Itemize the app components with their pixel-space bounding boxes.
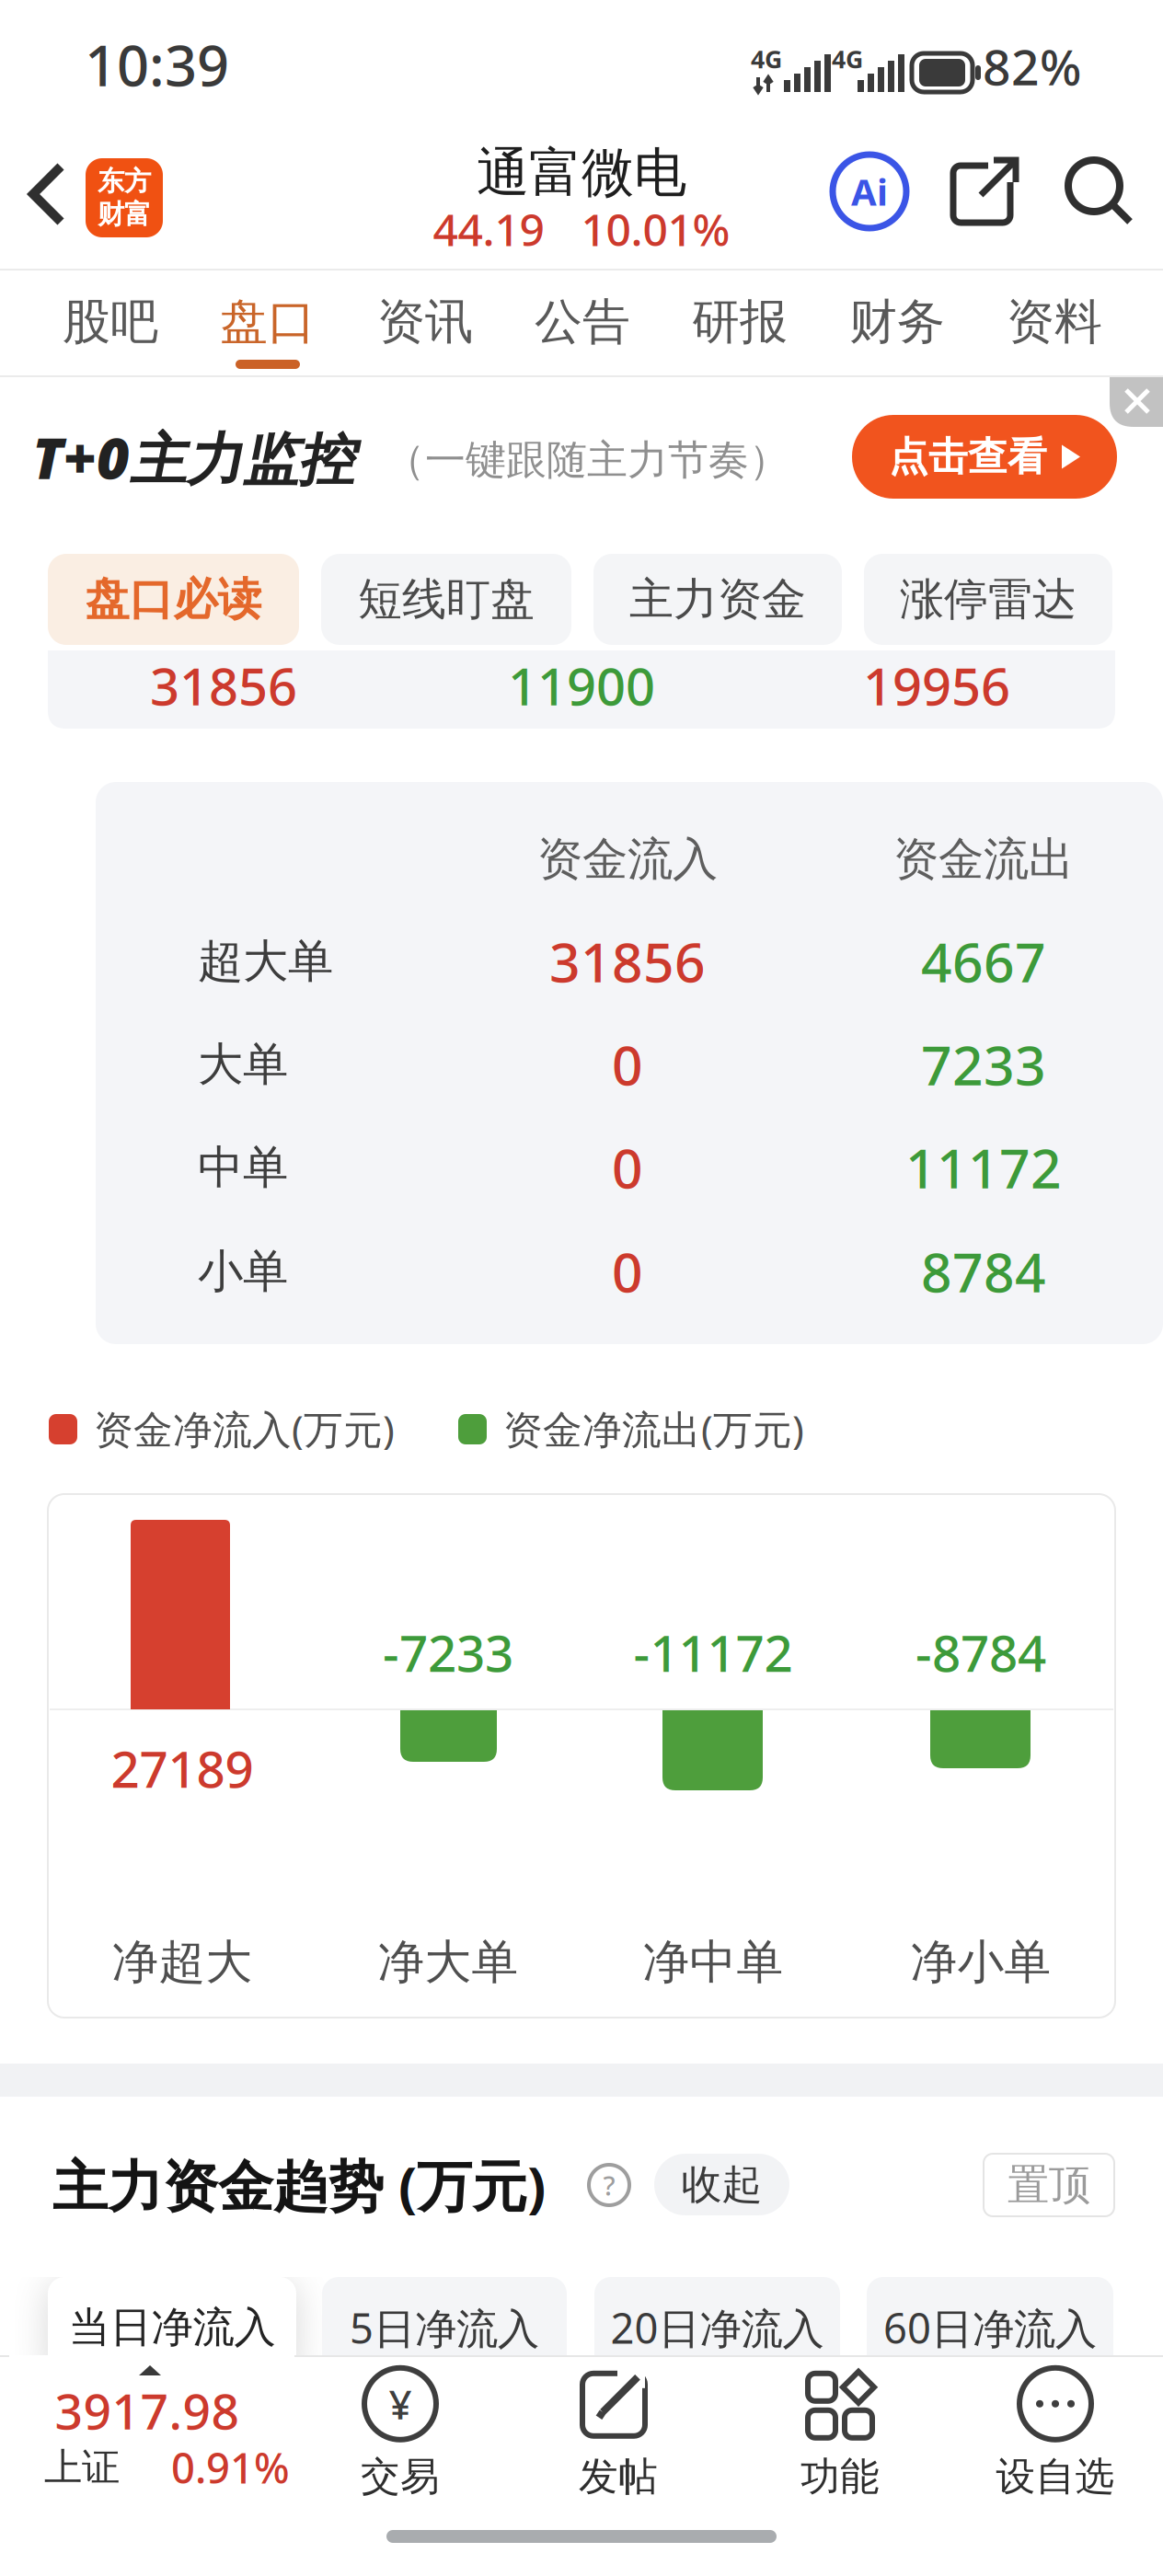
- staticText: 资金净流出(万元): [503, 1403, 804, 1455]
- staticText: -7233: [383, 1619, 513, 1686]
- staticText: 0: [612, 1029, 643, 1100]
- staticText: 设自选: [996, 2453, 1115, 2501]
- staticText: 31856: [150, 651, 297, 720]
- button[interactable]: 盘口必读: [48, 554, 299, 645]
- button[interactable]: Search: [1064, 155, 1134, 225]
- button[interactable]: 涨停雷达: [864, 554, 1112, 645]
- staticText: 10.01%: [581, 200, 730, 258]
- staticText: 11172: [905, 1132, 1062, 1203]
- staticText: 4667: [921, 926, 1046, 997]
- button[interactable]: 5日净流入: [322, 2277, 567, 2378]
- staticText: 发帖: [579, 2453, 658, 2501]
- staticText: 60日净流入: [883, 2300, 1097, 2355]
- staticText: 点击查看: [889, 433, 1047, 481]
- button[interactable]: Ai 助手: [830, 152, 909, 231]
- staticText: 研报: [692, 293, 788, 351]
- staticText: 小单: [198, 1244, 288, 1299]
- staticText: 4G: [832, 43, 863, 75]
- staticText: T+0主力监控: [32, 420, 354, 495]
- staticText: 0.91%: [171, 2440, 290, 2495]
- staticText: （一键跟随主力节奏）: [385, 435, 789, 485]
- staticText: 0: [612, 1132, 643, 1203]
- staticText: 置顶: [1008, 2159, 1090, 2211]
- button[interactable]: 财务: [823, 270, 971, 375]
- staticText: 股吧: [63, 293, 158, 351]
- staticText: 主力资金趋势 (万元): [52, 2148, 546, 2222]
- button[interactable]: 点击查看: [852, 415, 1117, 499]
- staticText: 公告: [535, 293, 630, 351]
- button[interactable]: 帮助: [587, 2163, 631, 2207]
- staticText: ¥: [389, 2377, 412, 2431]
- staticText: 收起: [681, 2160, 762, 2209]
- button[interactable]: 盘口: [194, 270, 341, 375]
- staticText: 资讯: [377, 293, 473, 351]
- button[interactable]: Close: [1110, 377, 1163, 427]
- button[interactable]: 置顶: [984, 2154, 1114, 2216]
- button[interactable]: Back: [29, 163, 66, 225]
- staticText: 7233: [921, 1029, 1046, 1100]
- staticText: 3917.98: [55, 2378, 240, 2443]
- staticText: 财务: [849, 293, 945, 351]
- staticText: 4G: [751, 43, 782, 75]
- staticText: -11172: [633, 1619, 793, 1686]
- staticText: ?: [603, 2167, 615, 2203]
- button[interactable]: 20日净流入: [594, 2277, 840, 2378]
- button[interactable]: 股吧: [37, 270, 184, 375]
- staticText: 净中单: [643, 1934, 783, 1991]
- staticText: 主力资金: [629, 572, 806, 627]
- staticText: 20日净流入: [610, 2300, 824, 2355]
- staticText: 资金净流入(万元): [94, 1403, 395, 1455]
- button[interactable]: 功能: [739, 2364, 941, 2502]
- staticText: 财富: [98, 198, 151, 231]
- staticText: 当日净流入: [69, 2302, 276, 2353]
- button[interactable]: Share: [953, 156, 1021, 224]
- staticText: 中单: [198, 1140, 288, 1195]
- button[interactable]: 60日净流入: [867, 2277, 1113, 2378]
- staticText: 净大单: [378, 1934, 518, 1991]
- button[interactable]: 设自选: [954, 2364, 1157, 2502]
- staticText: 8784: [921, 1236, 1046, 1307]
- staticText: 19956: [863, 651, 1010, 720]
- staticText: 44.19: [433, 200, 544, 258]
- staticText: 27189: [111, 1735, 253, 1802]
- button[interactable]: 主力资金: [593, 554, 842, 645]
- button[interactable]: 收起: [654, 2154, 789, 2215]
- button[interactable]: 资讯: [351, 270, 499, 375]
- staticText: 涨停雷达: [900, 572, 1077, 627]
- button[interactable]: 当日净流入: [48, 2277, 296, 2378]
- button[interactable]: 研报: [666, 270, 813, 375]
- button[interactable]: 东方财富: [86, 158, 163, 237]
- staticText: 超大单: [198, 934, 333, 989]
- staticText: 5日净流入: [350, 2300, 539, 2355]
- staticText: -8784: [915, 1619, 1046, 1686]
- staticText: 11900: [508, 651, 655, 720]
- staticText: 10:39: [85, 27, 229, 102]
- button[interactable]: 短线盯盘: [321, 554, 571, 645]
- staticText: 0: [612, 1236, 643, 1307]
- staticText: 31856: [549, 926, 706, 997]
- staticText: 上证: [44, 2444, 120, 2491]
- button[interactable]: 公告: [509, 270, 656, 375]
- button[interactable]: ¥: [299, 2364, 501, 2502]
- staticText: 功能: [800, 2453, 880, 2501]
- staticText: 大单: [198, 1037, 288, 1092]
- staticText: 资金流出: [893, 831, 1074, 887]
- staticText: 资金流入: [537, 831, 718, 887]
- staticText: 盘口必读: [85, 572, 262, 627]
- button[interactable]: 发帖: [517, 2364, 720, 2502]
- staticText: 短线盯盘: [358, 572, 535, 627]
- staticText: 交易: [361, 2453, 440, 2501]
- button[interactable]: 资料: [981, 270, 1128, 375]
- staticText: 净超大: [112, 1934, 253, 1991]
- staticText: Ai: [851, 167, 888, 216]
- staticText: 盘口: [220, 293, 316, 351]
- staticText: 净小单: [910, 1934, 1051, 1991]
- staticText: 通富微电: [477, 141, 686, 205]
- staticText: 资料: [1007, 293, 1102, 351]
- button[interactable]: 上证指数: [9, 2355, 294, 2502]
- staticText: 82%: [983, 34, 1081, 99]
- staticText: 东方: [98, 165, 151, 198]
